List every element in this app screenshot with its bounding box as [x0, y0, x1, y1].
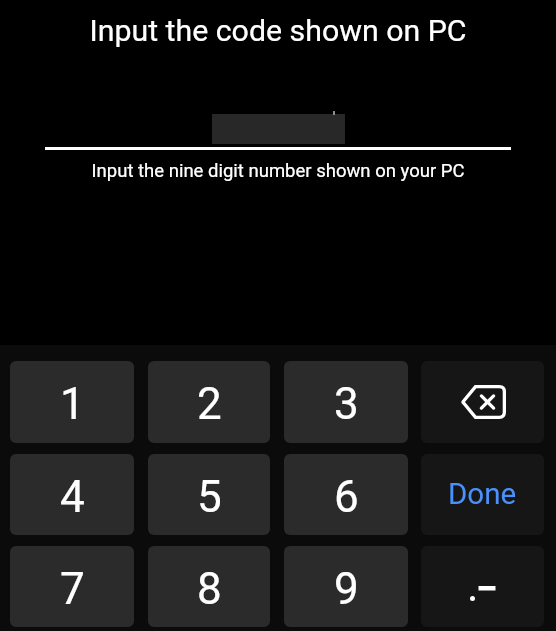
- staticText: 6: [334, 471, 359, 523]
- staticText: 5: [197, 471, 222, 523]
- button[interactable]: 9: [284, 546, 408, 627]
- button[interactable]: 3: [284, 361, 408, 443]
- staticText: 4: [60, 471, 85, 523]
- button[interactable]: 6: [284, 454, 408, 535]
- button[interactable]: 1: [10, 361, 134, 443]
- button[interactable]: 5: [148, 454, 270, 535]
- button[interactable]: Period and hyphen: [421, 546, 544, 627]
- staticText: 1: [60, 378, 85, 430]
- staticText: 2: [197, 378, 222, 430]
- button[interactable]: 2: [148, 361, 270, 443]
- button[interactable]: 7: [10, 546, 134, 627]
- staticText: 3: [334, 378, 359, 430]
- staticText: 8: [197, 563, 222, 615]
- staticText: Input the code shown on PC: [0, 13, 556, 49]
- button[interactable]: Done: [421, 454, 544, 535]
- button[interactable]: 8: [148, 546, 270, 627]
- staticText: Done: [448, 477, 517, 512]
- button[interactable]: 4: [10, 454, 134, 535]
- button[interactable]: Backspace: [421, 361, 544, 443]
- staticText: Input the nine digit number shown on you…: [0, 160, 556, 182]
- staticText: 9: [334, 563, 359, 615]
- staticText: 7: [60, 563, 85, 615]
